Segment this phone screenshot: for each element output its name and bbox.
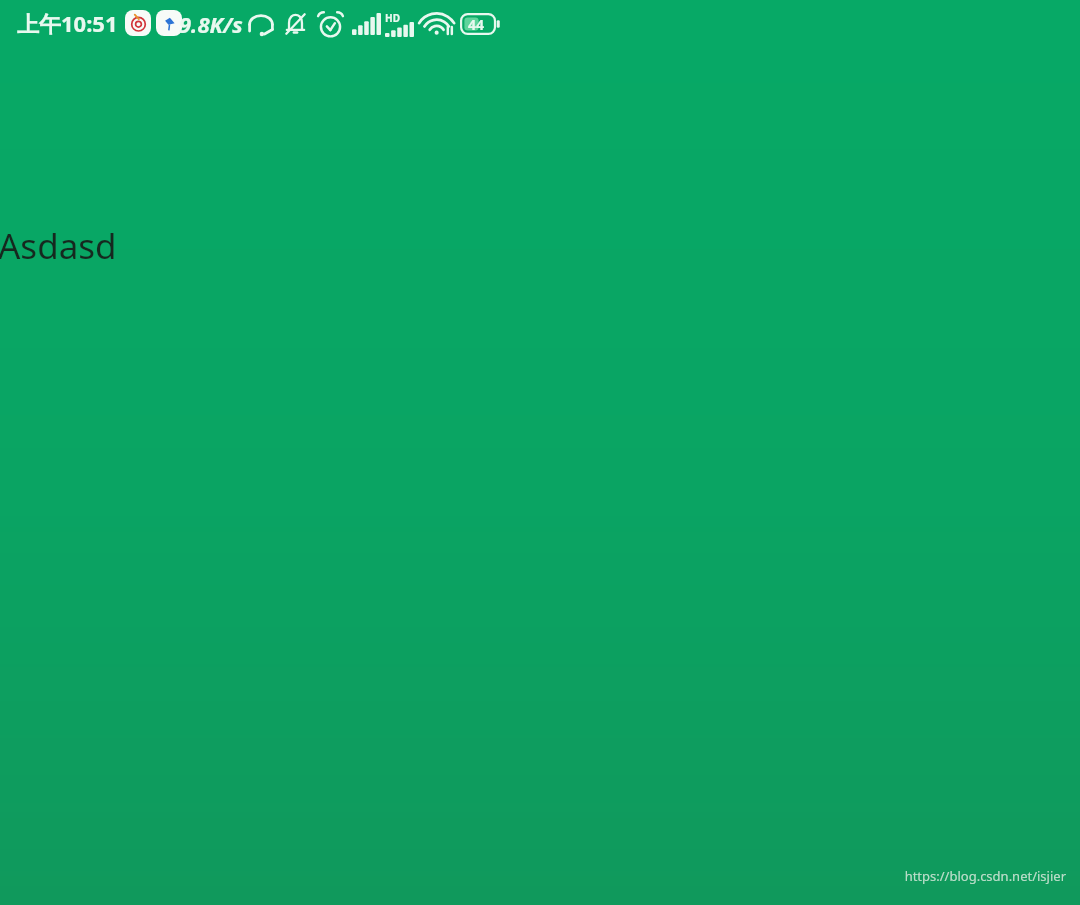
button[interactable]: App notification	[156, 10, 182, 36]
other: Alarm set	[316, 10, 345, 39]
other: Headset connected	[246, 12, 276, 37]
other: Notifications silenced	[282, 11, 309, 38]
other: Wi-Fi connected	[423, 12, 454, 36]
button[interactable]: Music notification	[125, 10, 151, 36]
button[interactable]: Asdasd	[0, 222, 117, 270]
staticText: 9.8K/s	[179, 9, 243, 39]
other: Battery 44 percent	[460, 13, 501, 35]
staticText: 44	[468, 15, 485, 34]
other: Mobile signal	[352, 13, 381, 35]
staticText: Asdasd	[0, 222, 117, 270]
staticText: 上午10:51	[17, 8, 118, 38]
staticText: https://blog.csdn.net/isjier	[904, 867, 1066, 885]
other: HD voice signal	[385, 12, 416, 37]
staticText: HD	[385, 11, 400, 25]
